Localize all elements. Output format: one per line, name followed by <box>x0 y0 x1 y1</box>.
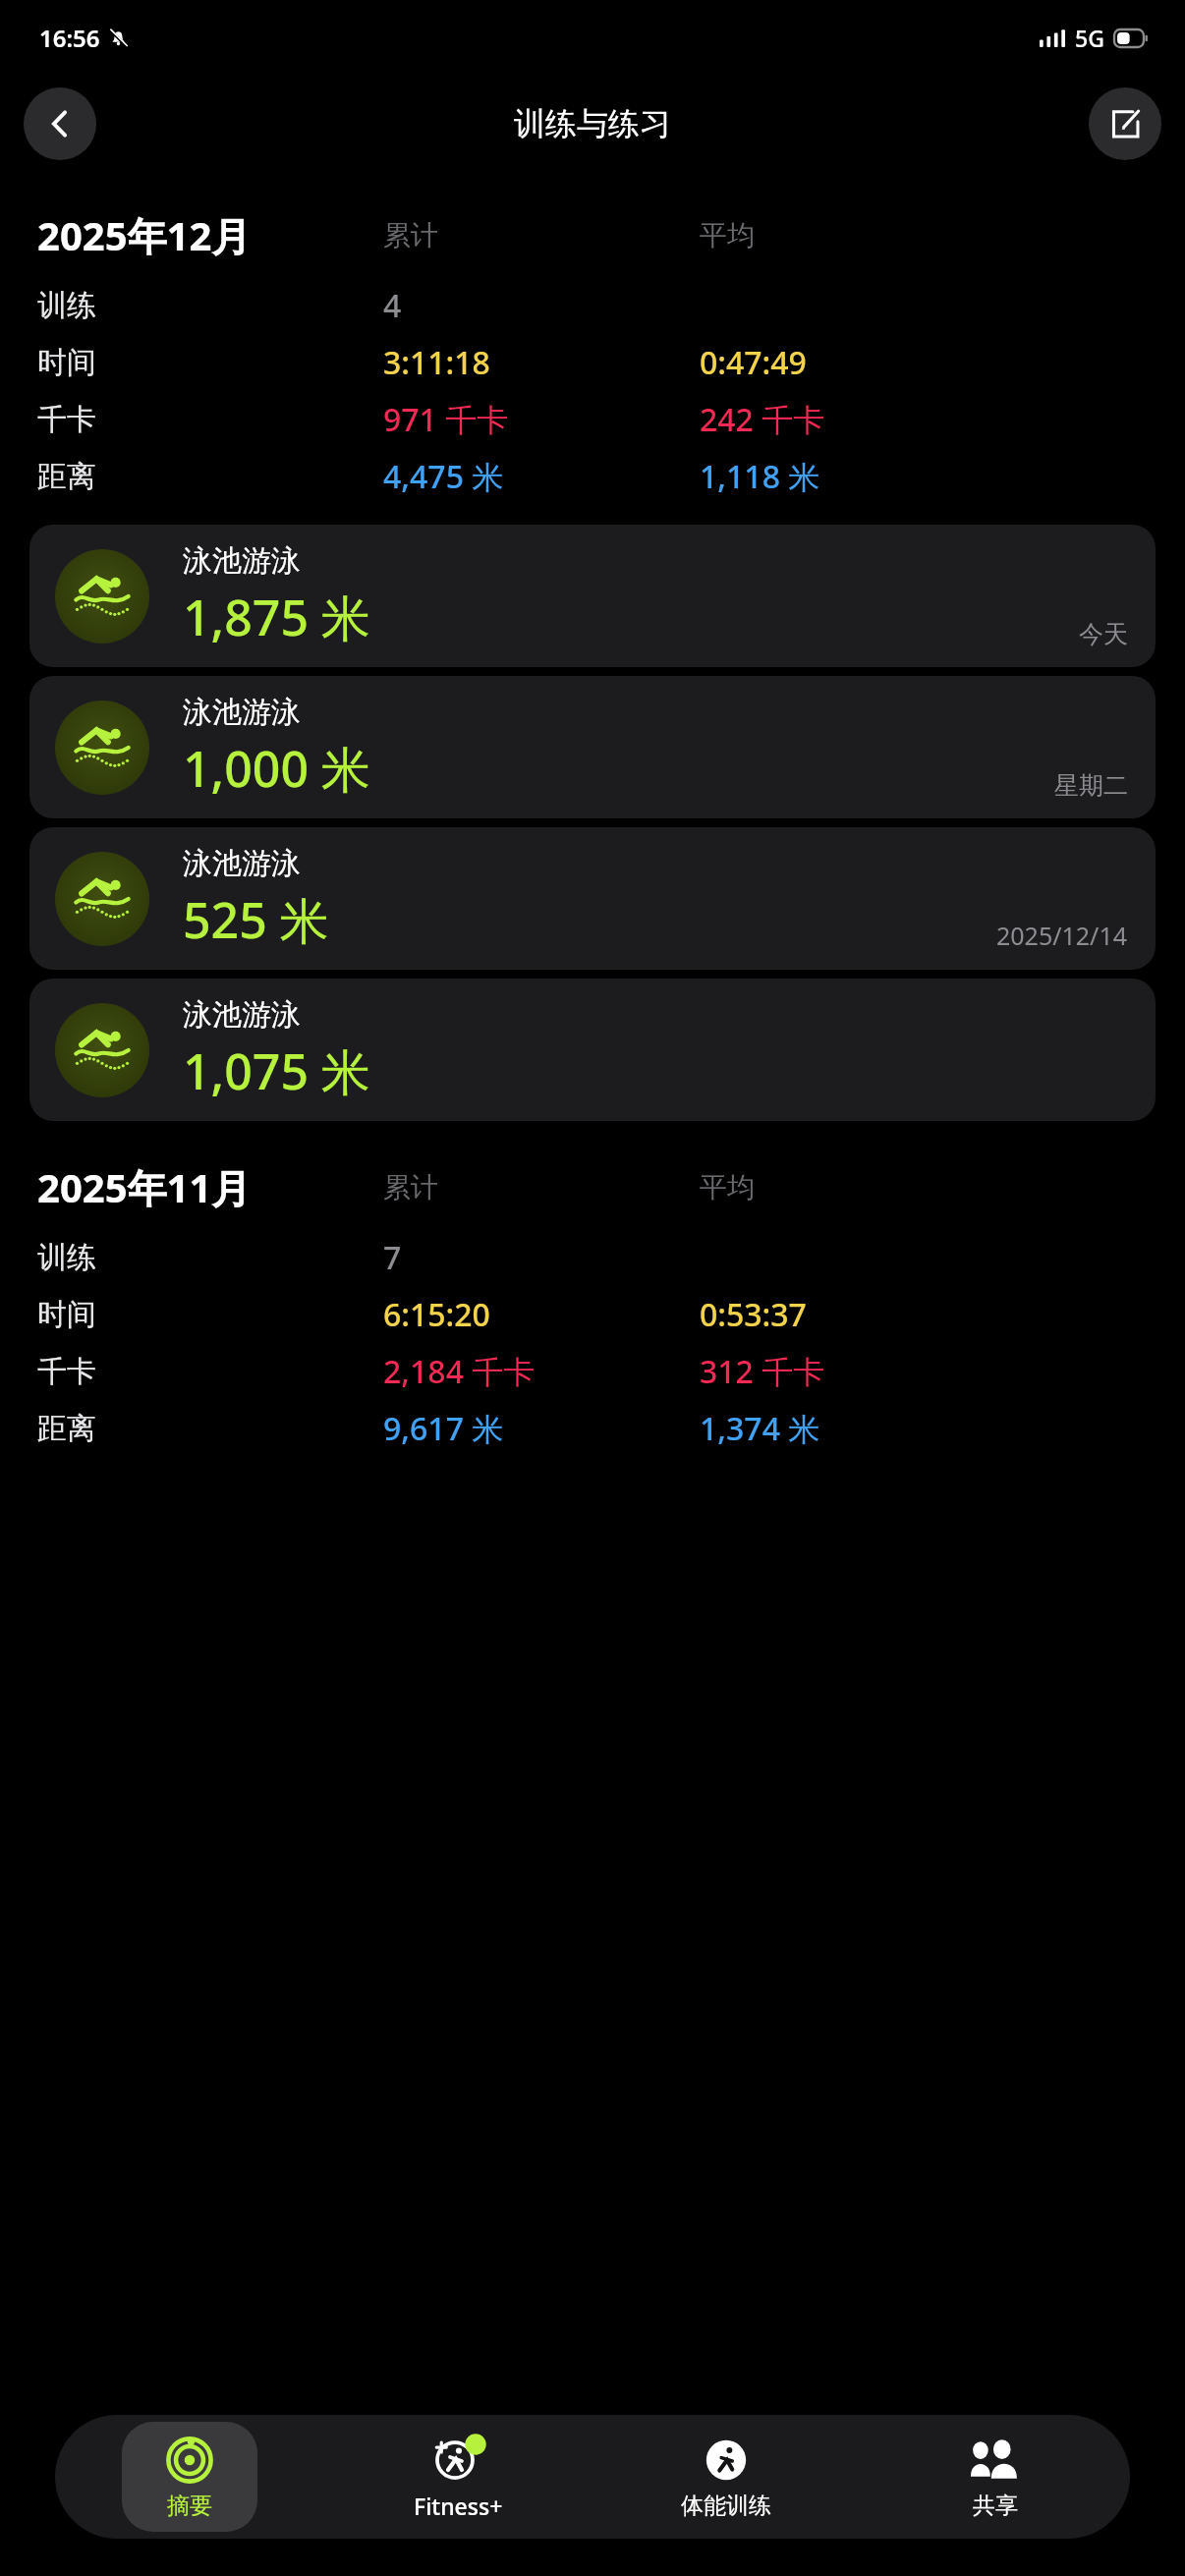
button[interactable]: 新建 <box>1089 87 1161 160</box>
staticText: 4,475 米 <box>383 455 504 498</box>
staticText: 体能训练 <box>681 2492 771 2520</box>
staticText: 7 <box>383 1236 402 1279</box>
staticText: 0:47:49 <box>700 341 807 384</box>
staticText: 距离 <box>37 1410 96 1447</box>
button[interactable]: 泳池游泳 <box>29 525 1156 667</box>
staticText: 泳池游泳 <box>183 542 301 580</box>
staticText: 1,075 米 <box>183 1037 371 1104</box>
staticText: 时间 <box>37 1296 96 1333</box>
staticText: 5G <box>1075 23 1104 53</box>
staticText: 训练与练习 <box>514 104 671 143</box>
staticText: 1,118 米 <box>700 455 820 498</box>
staticText: 1,374 米 <box>700 1407 820 1450</box>
staticText: 971 千卡 <box>383 398 509 441</box>
staticText: 16:56 <box>39 22 100 54</box>
staticText: 摘要 <box>167 2492 212 2520</box>
staticText: 4 <box>383 284 402 327</box>
button[interactable]: 泳池游泳 <box>29 827 1156 970</box>
staticText: 千卡 <box>37 1353 96 1390</box>
staticText: 累计 <box>383 218 438 252</box>
staticText: 泳池游泳 <box>183 845 301 882</box>
staticText: 1,875 米 <box>183 584 371 650</box>
staticText: 525 米 <box>183 886 329 953</box>
staticText: 6:15:20 <box>383 1293 490 1336</box>
staticText: 平均 <box>700 218 755 252</box>
button[interactable]: 体能训练 <box>658 2422 794 2532</box>
staticText: 训练 <box>37 287 96 324</box>
staticText: 1,000 米 <box>183 735 371 802</box>
staticText: 训练 <box>37 1239 96 1276</box>
staticText: 2,184 千卡 <box>383 1350 536 1393</box>
staticText: 泳池游泳 <box>183 996 301 1034</box>
staticText: 时间 <box>37 344 96 381</box>
staticText: 312 千卡 <box>700 1350 825 1393</box>
button[interactable]: 摘要 <box>122 2422 257 2532</box>
staticText: 距离 <box>37 458 96 495</box>
staticText: 共享 <box>973 2492 1018 2520</box>
button[interactable]: 返回 <box>24 87 96 160</box>
staticText: 星期二 <box>1054 770 1128 801</box>
staticText: 2025年11月 <box>37 1160 252 1214</box>
staticText: 泳池游泳 <box>183 694 301 731</box>
button[interactable]: 共享 <box>928 2422 1063 2532</box>
staticText: 累计 <box>383 1170 438 1204</box>
staticText: 2025/12/14 <box>996 919 1128 952</box>
staticText: 3:11:18 <box>383 341 490 384</box>
staticText: 242 千卡 <box>700 398 825 441</box>
button[interactable]: 泳池游泳 <box>29 979 1156 1121</box>
staticText: Fitness+ <box>414 2491 503 2521</box>
staticText: 0:53:37 <box>700 1293 807 1336</box>
staticText: 千卡 <box>37 401 96 438</box>
staticText: 9,617 米 <box>383 1407 504 1450</box>
button[interactable]: Fitness+ <box>390 2422 526 2532</box>
staticText: 今天 <box>1079 619 1128 649</box>
staticText: 2025年12月 <box>37 208 252 262</box>
button[interactable]: 泳池游泳 <box>29 676 1156 818</box>
staticText: 平均 <box>700 1170 755 1204</box>
